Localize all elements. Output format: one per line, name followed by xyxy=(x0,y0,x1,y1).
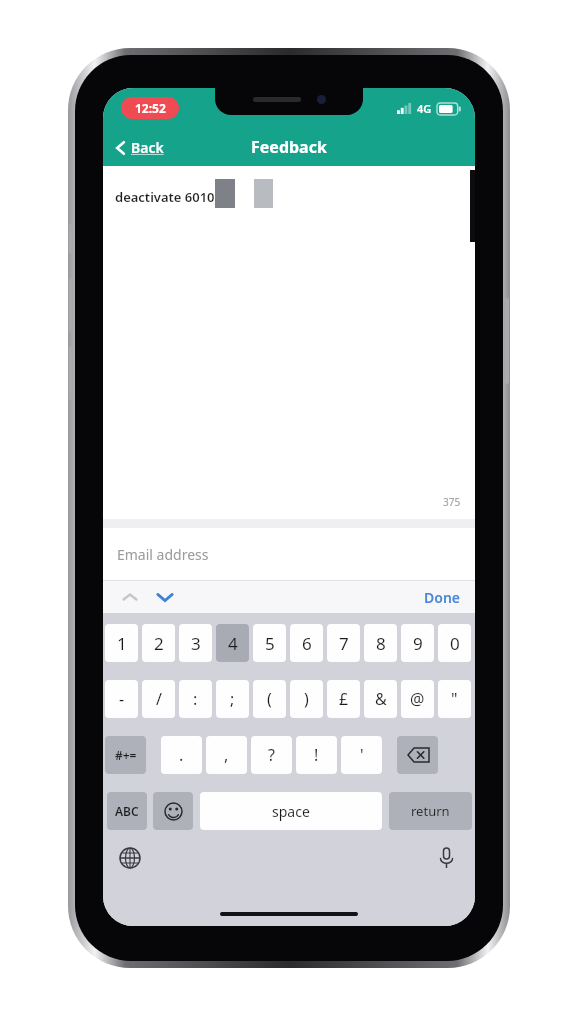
staticText: . xyxy=(179,744,184,766)
button[interactable]: space xyxy=(200,792,382,830)
button[interactable]: ? xyxy=(251,736,292,774)
button[interactable]: Dictation xyxy=(429,841,463,875)
staticText: & xyxy=(375,688,387,710)
button[interactable]: 9 xyxy=(401,624,434,662)
staticText: 9 xyxy=(413,632,423,655)
staticText: 0 xyxy=(450,632,460,655)
button[interactable]: 3 xyxy=(179,624,212,662)
staticText: 7 xyxy=(339,632,349,655)
staticText: #+= xyxy=(115,747,137,763)
button[interactable]: 0 xyxy=(438,624,471,662)
button[interactable]: ( xyxy=(253,680,286,718)
staticText: 1 xyxy=(117,632,127,655)
staticText: space xyxy=(272,802,310,821)
button[interactable]: Backspace xyxy=(397,736,438,774)
staticText: 375 xyxy=(443,495,461,509)
button[interactable]: " xyxy=(438,680,471,718)
staticText: ABC xyxy=(115,803,139,819)
staticText: , xyxy=(224,744,229,766)
staticText: : xyxy=(193,688,198,710)
button[interactable]: return xyxy=(389,792,472,830)
staticText: ? xyxy=(268,744,275,766)
staticText: 2 xyxy=(154,632,164,655)
button[interactable]: 6 xyxy=(290,624,323,662)
staticText: 12:52 xyxy=(135,100,166,116)
button[interactable]: 2 xyxy=(142,624,175,662)
button[interactable]: 1 xyxy=(105,624,138,662)
button[interactable]: - xyxy=(105,680,138,718)
staticText: Back xyxy=(131,138,164,157)
staticText: 4G xyxy=(417,101,432,116)
button[interactable]: 4 xyxy=(216,624,249,662)
staticText: 6 xyxy=(302,632,312,655)
button[interactable]: Done xyxy=(424,588,461,607)
button[interactable]: & xyxy=(364,680,397,718)
button[interactable]: Back xyxy=(113,138,164,157)
staticText: £ xyxy=(339,688,349,710)
staticText: deactivate 6010 xyxy=(115,188,215,206)
staticText: ) xyxy=(304,688,309,710)
button[interactable]: ; xyxy=(216,680,249,718)
button[interactable]: / xyxy=(142,680,175,718)
button[interactable]: Next field xyxy=(151,583,179,611)
button[interactable]: £ xyxy=(327,680,360,718)
staticText: ! xyxy=(314,744,319,766)
staticText: / xyxy=(156,688,162,710)
button[interactable]: 5 xyxy=(253,624,286,662)
button[interactable]: 8 xyxy=(364,624,397,662)
button[interactable]: ABC xyxy=(107,792,147,830)
staticText: 3 xyxy=(191,632,201,655)
staticText: ' xyxy=(360,744,364,766)
button[interactable]: Email address xyxy=(103,528,475,580)
button[interactable]: @ xyxy=(401,680,434,718)
button[interactable]: ) xyxy=(290,680,323,718)
staticText: ; xyxy=(230,688,235,710)
button[interactable]: Previous field xyxy=(117,584,143,610)
button[interactable]: Change keyboard language xyxy=(113,841,147,875)
staticText: 5 xyxy=(265,632,275,655)
staticText: " xyxy=(451,688,458,710)
staticText: Done xyxy=(424,588,461,607)
staticText: - xyxy=(119,688,125,710)
button[interactable]: . xyxy=(161,736,202,774)
button[interactable]: : xyxy=(179,680,212,718)
button[interactable]: ' xyxy=(341,736,382,774)
staticText: Email address xyxy=(117,545,209,564)
button[interactable]: #+= xyxy=(105,736,146,774)
staticText: 4 xyxy=(228,632,238,655)
button[interactable]: 7 xyxy=(327,624,360,662)
staticText: ( xyxy=(267,688,272,710)
button[interactable]: Emoji xyxy=(153,792,193,830)
staticText: Feedback xyxy=(251,136,327,158)
button[interactable]: , xyxy=(206,736,247,774)
button[interactable]: ! xyxy=(296,736,337,774)
staticText: @ xyxy=(410,688,425,710)
staticText: return xyxy=(411,802,450,820)
staticText: 8 xyxy=(376,632,386,655)
